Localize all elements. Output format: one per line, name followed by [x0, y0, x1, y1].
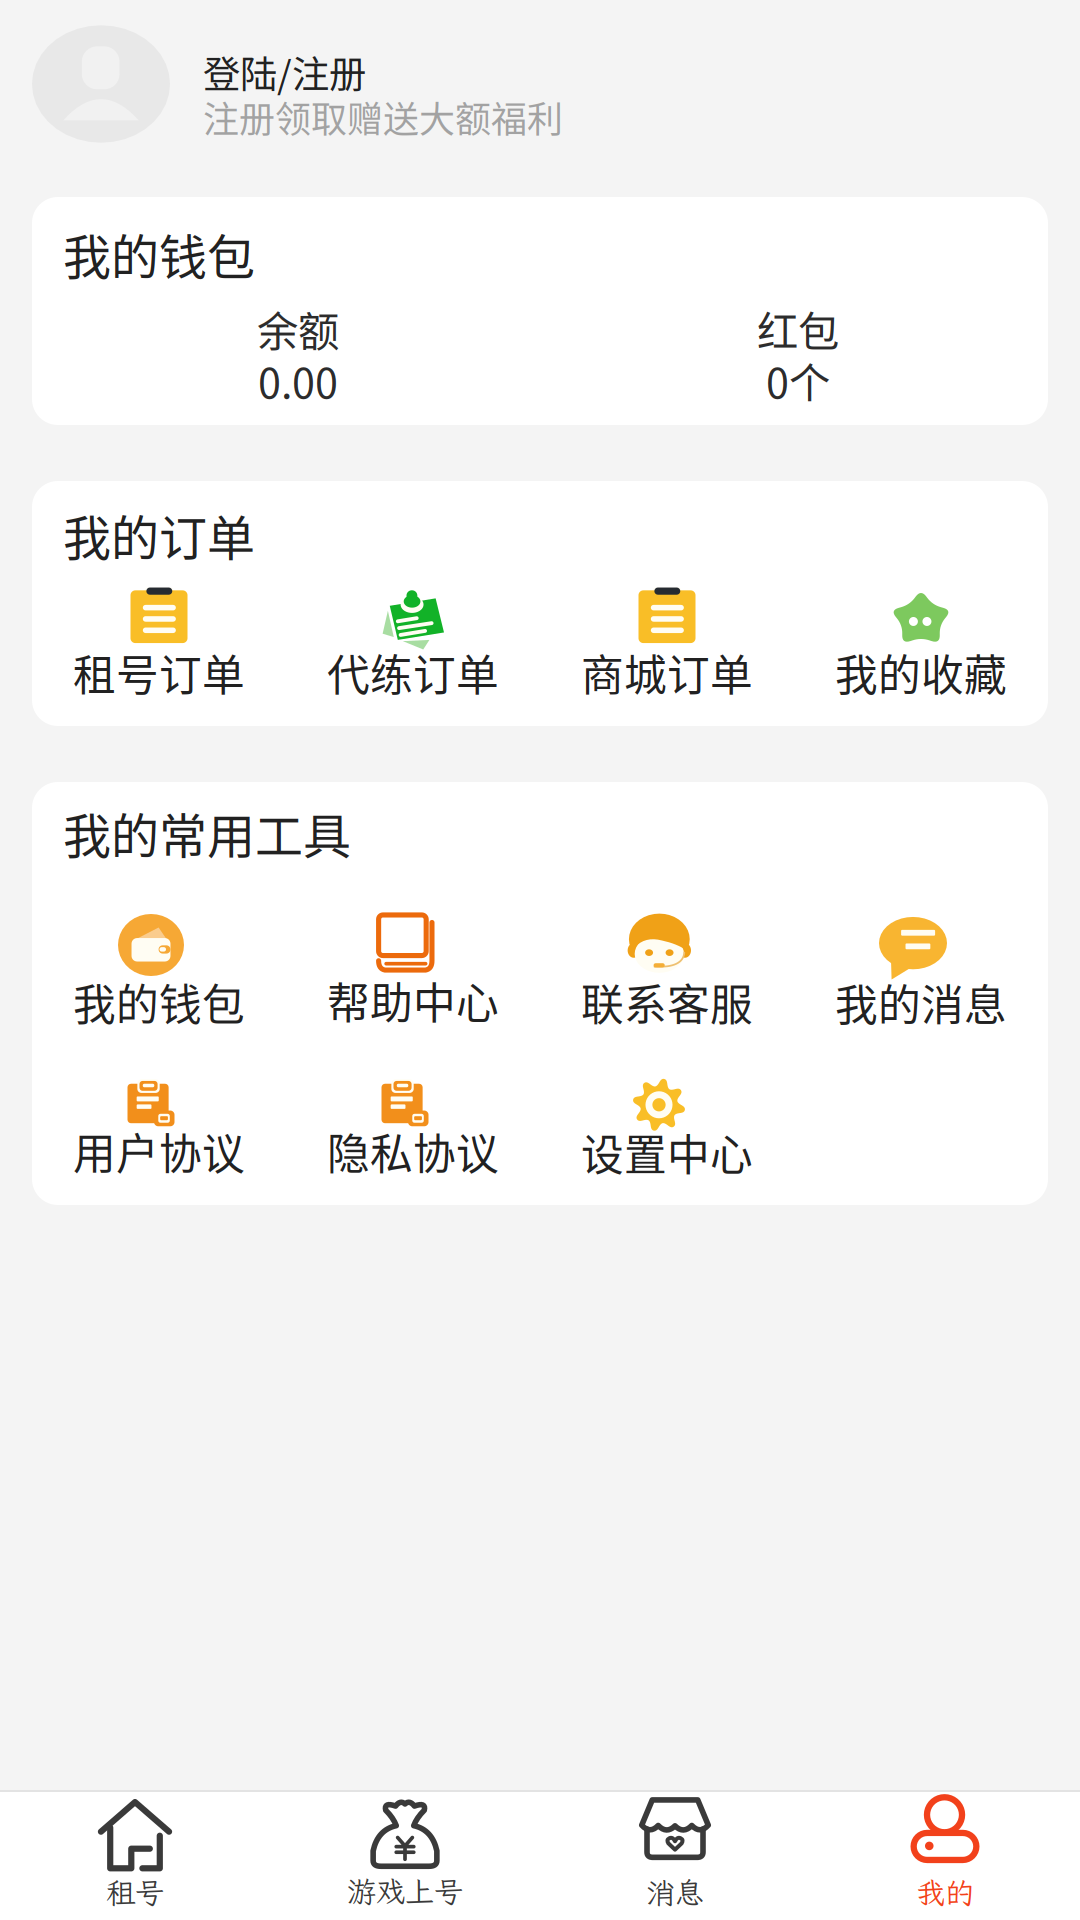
staticText: 我的收藏 — [835, 641, 1007, 703]
button[interactable]: 我的 — [810, 1792, 1080, 1920]
button[interactable]: 隐私协议 — [286, 1079, 540, 1182]
staticText: 红包 — [757, 298, 839, 358]
staticText: 0个 — [766, 350, 830, 410]
staticText: 余额 — [257, 298, 339, 358]
staticText: 游戏上号 — [347, 1872, 463, 1911]
button[interactable]: 联系客服 — [540, 912, 794, 1033]
staticText: 隐私协议 — [327, 1120, 499, 1182]
staticText: 注册领取赠送大额福利 — [203, 91, 563, 143]
staticText: 商城订单 — [581, 641, 753, 703]
button[interactable]: 我的收藏 — [794, 587, 1048, 703]
staticText: 帮助中心 — [327, 969, 499, 1031]
staticText: 我的常用工具 — [63, 798, 351, 867]
button[interactable]: 游戏上号 — [270, 1792, 540, 1920]
staticText: 我的订单 — [63, 500, 255, 569]
staticText: 联系客服 — [581, 971, 753, 1033]
button[interactable]: 消息 — [540, 1792, 810, 1920]
staticText: 我的钱包 — [63, 219, 255, 288]
staticText: 我的 — [916, 1873, 974, 1912]
staticText: 设置中心 — [581, 1121, 753, 1183]
staticText: 租号 — [106, 1873, 164, 1912]
staticText: 登陆/注册 — [203, 45, 366, 99]
staticText: 我的消息 — [835, 971, 1007, 1033]
button[interactable]: 设置中心 — [540, 1078, 794, 1183]
staticText: 用户协议 — [73, 1120, 245, 1182]
button[interactable]: 租号订单 — [32, 587, 286, 703]
button[interactable]: 租号 — [0, 1792, 270, 1920]
button[interactable]: 用户协议 — [32, 1079, 286, 1182]
button[interactable]: 我的钱包 — [32, 912, 286, 1033]
button[interactable]: 登陆/注册 — [0, 0, 1080, 150]
staticText: 租号订单 — [73, 641, 245, 703]
button[interactable]: 帮助中心 — [286, 913, 540, 1031]
button[interactable]: 代练订单 — [286, 587, 540, 703]
staticText: 代练订单 — [327, 641, 499, 703]
button[interactable]: 商城订单 — [540, 587, 794, 703]
staticText: 0.00 — [258, 350, 338, 410]
button[interactable]: 我的消息 — [794, 911, 1048, 1033]
staticText: 我的钱包 — [73, 971, 245, 1033]
staticText: 消息 — [646, 1873, 704, 1912]
